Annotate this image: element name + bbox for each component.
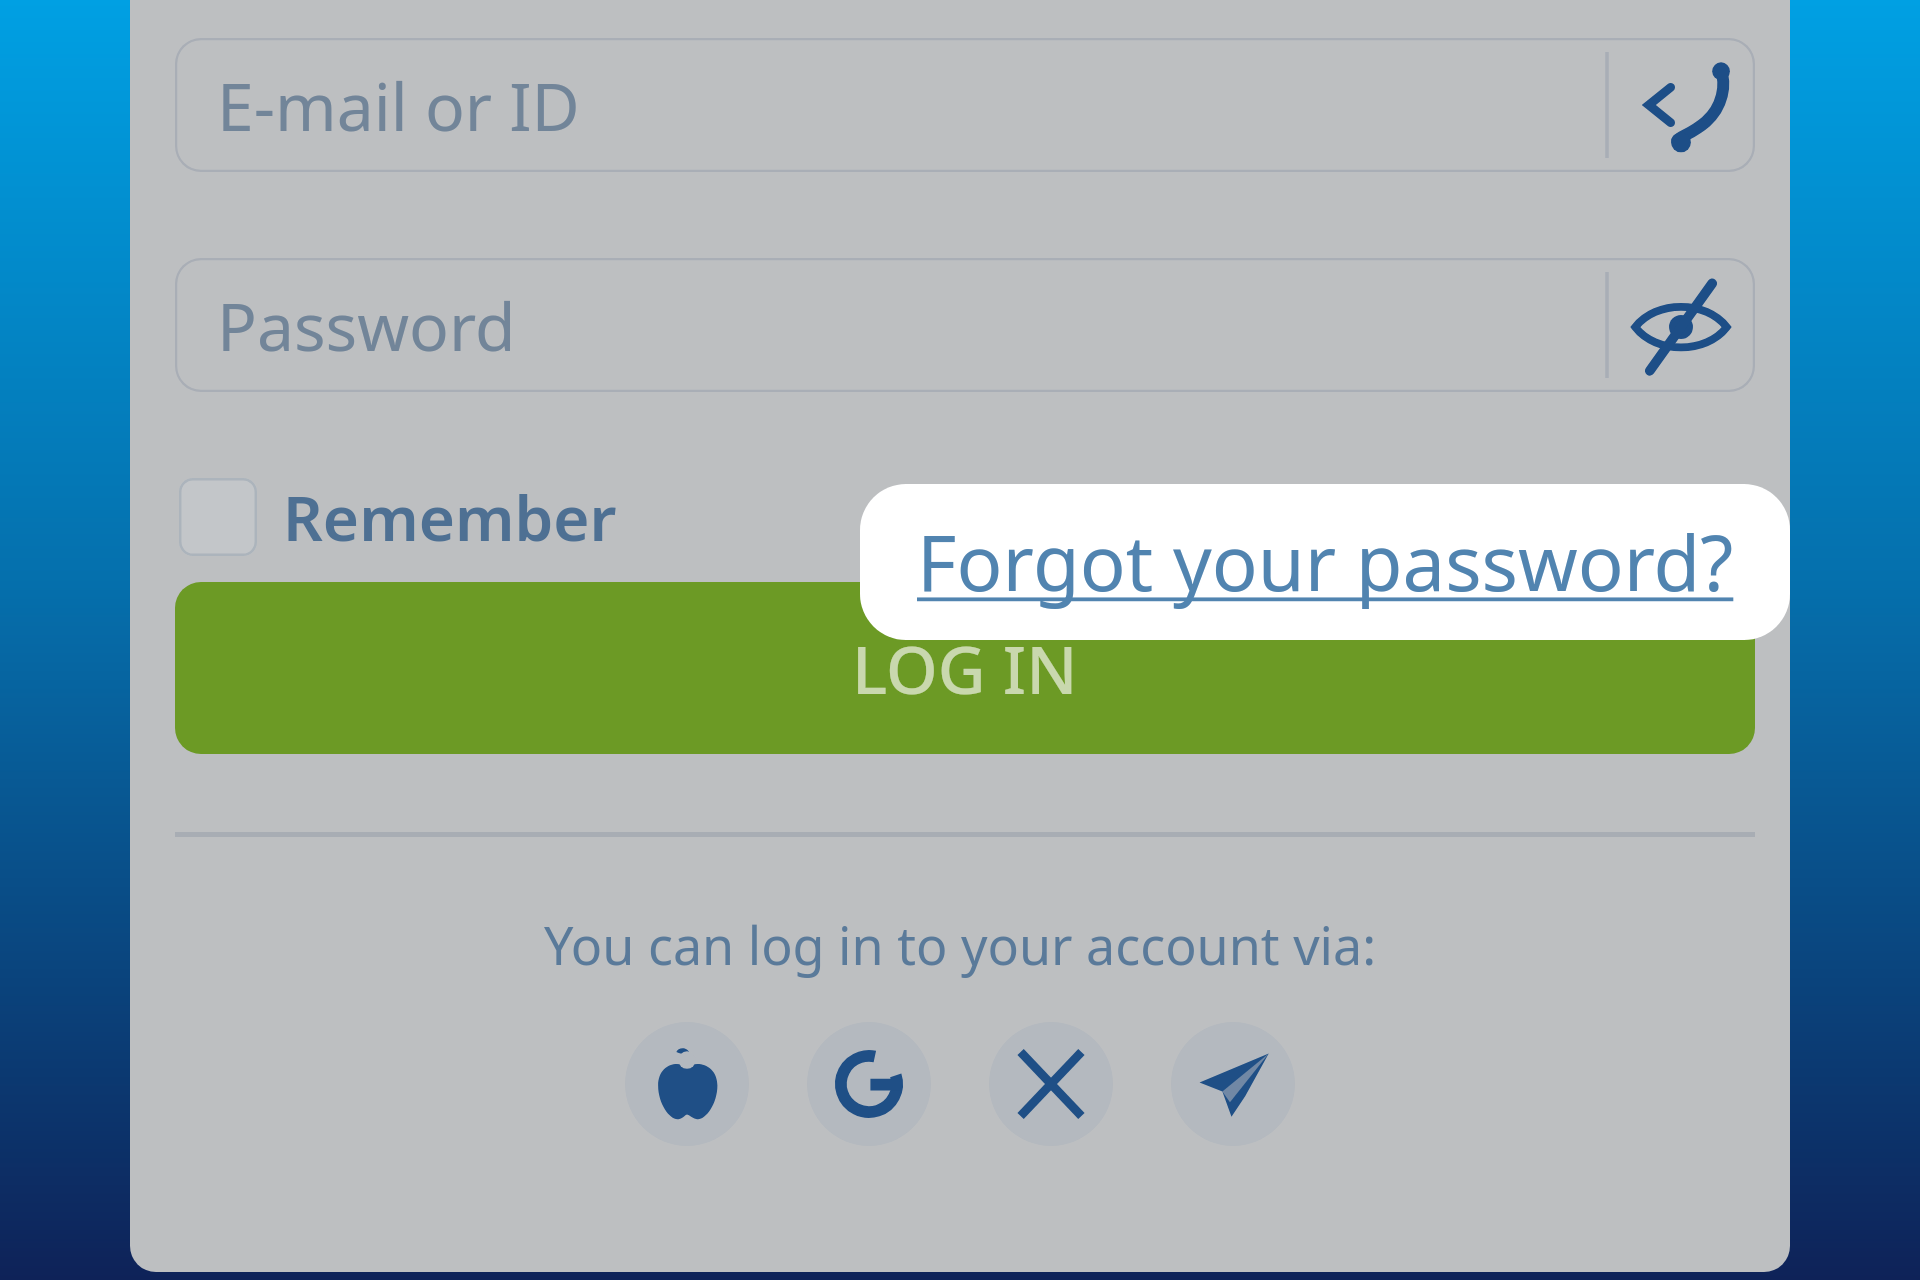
staticText: Forgot your password? bbox=[917, 510, 1734, 614]
button[interactable]: Show password bbox=[1629, 273, 1733, 377]
button[interactable]: Use phone number bbox=[1629, 53, 1733, 157]
staticText: You can log in to your account via: bbox=[544, 909, 1377, 980]
button[interactable]: LOG IN bbox=[175, 582, 1755, 754]
staticText: LOG IN bbox=[852, 623, 1078, 713]
button[interactable]: Forgot your password? bbox=[860, 484, 1790, 640]
button[interactable]: Remember bbox=[175, 469, 621, 565]
button[interactable]: Sign in with Apple bbox=[625, 1022, 749, 1146]
staticText: Password bbox=[217, 280, 516, 370]
staticText: Remember bbox=[283, 475, 617, 559]
button[interactable]: E-mail or ID bbox=[175, 38, 1755, 172]
button[interactable]: Sign in with Telegram bbox=[1171, 1022, 1295, 1146]
button[interactable]: Sign in with X bbox=[989, 1022, 1113, 1146]
button[interactable]: Password bbox=[175, 258, 1755, 392]
button[interactable]: Sign in with Google bbox=[807, 1022, 931, 1146]
staticText: E-mail or ID bbox=[217, 60, 580, 150]
